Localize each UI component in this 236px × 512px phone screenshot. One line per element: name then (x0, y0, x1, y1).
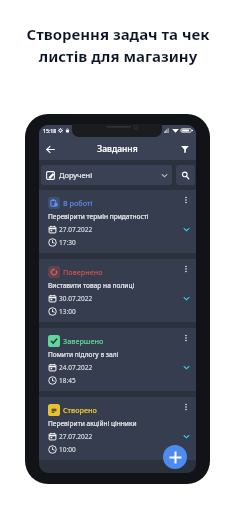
button[interactable]: Expand (180, 430, 192, 442)
button[interactable]: More options (180, 401, 191, 412)
staticText: 15:18 (43, 127, 57, 134)
staticText: Перевірити акційні цінники (48, 419, 137, 428)
staticText: 13:00 (59, 307, 76, 316)
staticText: 10:00 (59, 445, 76, 454)
staticText: Завдання (58, 143, 177, 155)
button[interactable]: Доручені (41, 165, 172, 185)
button[interactable]: В роботі (39, 190, 196, 253)
staticText: 30.07.2022 (59, 294, 93, 303)
button[interactable]: Search (176, 165, 195, 185)
staticText: Повернено (63, 267, 103, 277)
button[interactable]: More options (180, 263, 191, 274)
staticText: 17:30 (59, 238, 76, 247)
button[interactable]: Завершено (39, 328, 196, 391)
staticText: Створення задач та чек листів для магази… (0, 24, 236, 67)
staticText: Перевірити термін придатності (48, 212, 149, 221)
staticText: Завершено (63, 336, 104, 346)
staticText: В роботі (63, 198, 93, 208)
button[interactable]: Expand (180, 292, 192, 304)
staticText: 18:45 (59, 376, 76, 385)
button[interactable]: Повернено (39, 259, 196, 322)
staticText: Виставити товар на полиці (48, 281, 135, 290)
button[interactable]: Back (42, 141, 58, 157)
staticText: 24.07.2022 (59, 363, 93, 372)
staticText: 27.07.2022 (59, 432, 93, 441)
button[interactable]: Expand (180, 361, 192, 373)
staticText: Доручені (59, 170, 93, 180)
staticText: Створено (63, 405, 97, 415)
button[interactable]: Створено (39, 397, 196, 460)
staticText: 27.07.2022 (59, 225, 93, 234)
button[interactable]: More options (180, 332, 191, 343)
button[interactable]: Add task (163, 445, 187, 469)
button[interactable]: More options (180, 194, 191, 205)
button[interactable]: Expand (180, 223, 192, 235)
button[interactable]: Filter (177, 141, 193, 157)
staticText: Помити підлогу в залі (48, 350, 119, 359)
